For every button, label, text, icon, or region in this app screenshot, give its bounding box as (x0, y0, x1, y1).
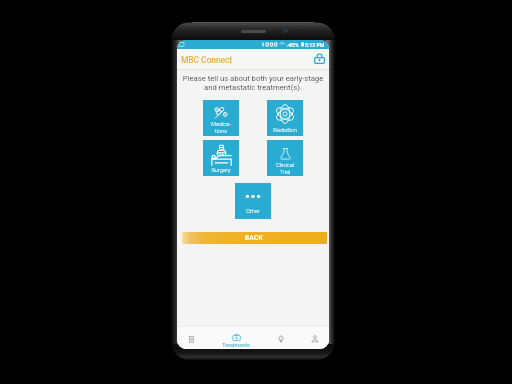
button[interactable]: Treatments (217, 327, 255, 349)
button[interactable]: Other (235, 183, 271, 219)
button[interactable]: Insights (262, 327, 300, 349)
staticText: Medica- tions (203, 121, 239, 134)
button[interactable]: Clinical Trial (267, 140, 303, 176)
button[interactable]: Lock (311, 50, 328, 67)
staticText: Other (235, 208, 271, 215)
button[interactable]: Medica- tions (203, 100, 239, 136)
button[interactable]: Journal (177, 327, 210, 349)
staticText: Treatments (217, 342, 255, 348)
staticText: Radiation (267, 127, 303, 134)
staticText: Please tell us about both your early-sta… (177, 74, 329, 92)
button[interactable]: Surgery (203, 140, 239, 176)
staticText: BACK (245, 234, 264, 242)
staticText: 5:13 PM (305, 42, 325, 48)
staticText: 45% (289, 42, 299, 48)
button[interactable]: BACK (182, 232, 327, 244)
staticText: Surgery (203, 167, 239, 174)
button[interactable]: Profile (296, 327, 329, 349)
staticText: MBC Connect (181, 55, 233, 65)
staticText: Clinical Trial (267, 162, 303, 175)
button[interactable]: Radiation (267, 100, 303, 136)
